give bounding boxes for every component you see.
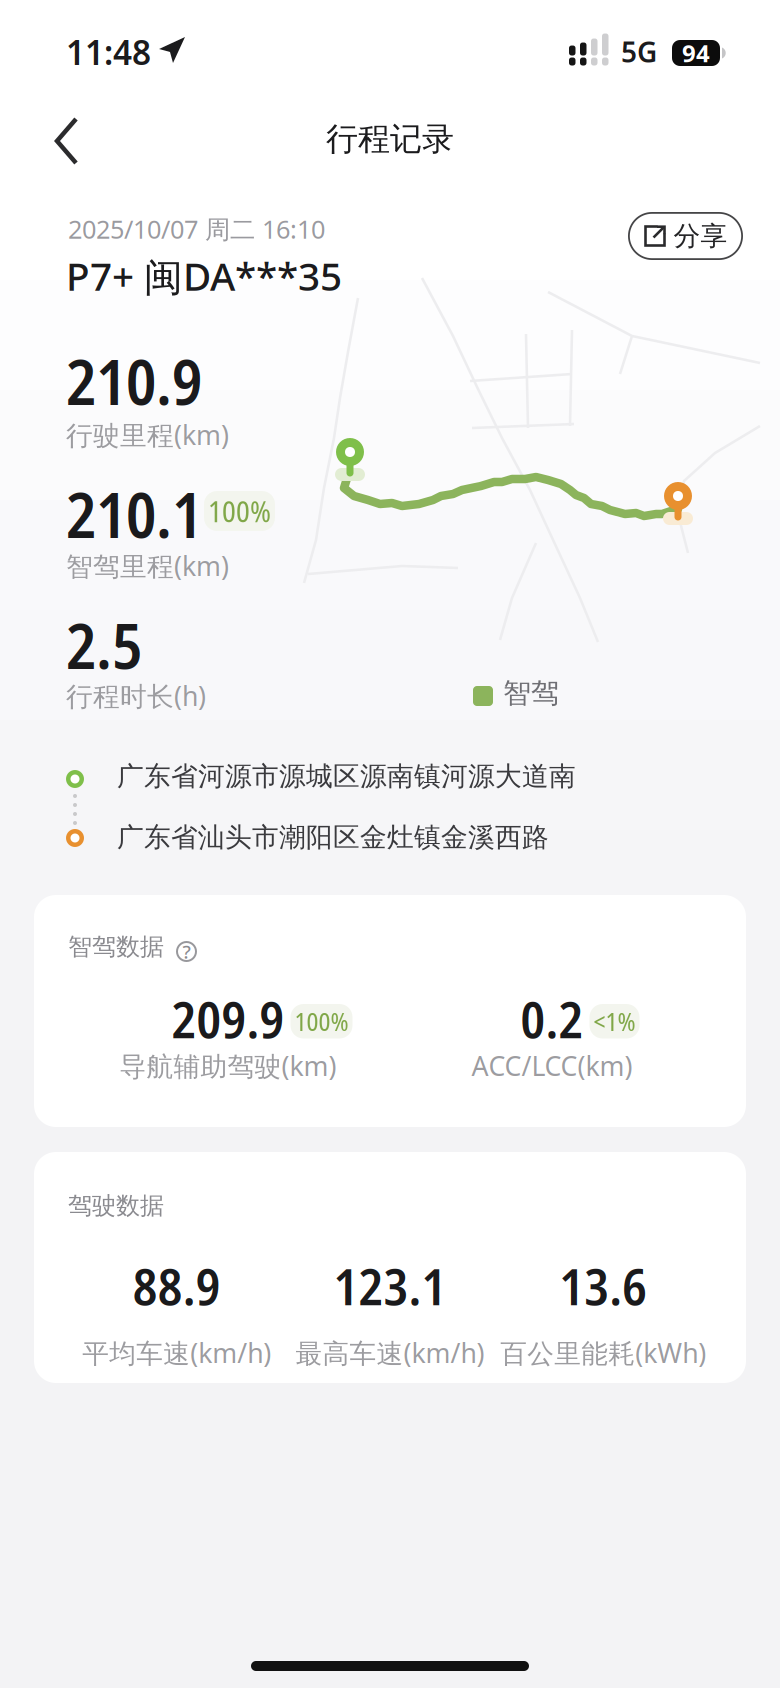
staticText: 行程时长(h)	[66, 678, 206, 713]
staticText: 最高车速(km/h)	[295, 1335, 484, 1370]
staticText: ACC/LCC(km)	[471, 1048, 632, 1083]
staticText: 210.9	[66, 338, 202, 423]
staticText: 驾驶数据	[68, 1191, 164, 1220]
staticText: 210.1	[66, 471, 202, 556]
staticText: 2025/10/07 周二 16:10	[68, 212, 325, 246]
button[interactable]: Back	[37, 107, 97, 175]
staticText: 百公里能耗(kWh)	[500, 1335, 706, 1370]
button[interactable]: 智驾数据说明	[174, 939, 199, 964]
staticText: 88.9	[133, 1251, 221, 1320]
staticText: 导航辅助驾驶(km)	[119, 1048, 336, 1083]
staticText: 11:48	[66, 30, 151, 74]
staticText: 广东省河源市源城区源南镇河源大道南	[117, 760, 576, 793]
staticText: 2.5	[66, 602, 142, 687]
staticText: 平均车速(km/h)	[82, 1335, 271, 1370]
staticText: 智驾	[503, 676, 559, 710]
staticText: 0.2	[520, 984, 583, 1053]
staticText: P7+ 闽DA***35	[66, 250, 342, 301]
staticText: <1%	[593, 1004, 635, 1038]
staticText: 分享	[673, 220, 727, 252]
staticText: 123.1	[333, 1251, 446, 1320]
staticText: 13.6	[559, 1251, 647, 1320]
staticText: 100%	[208, 491, 271, 531]
staticText: 94	[682, 37, 710, 69]
staticText: 行程记录	[326, 119, 454, 159]
staticText: 209.9	[171, 984, 284, 1053]
staticText: 智驾数据	[68, 932, 164, 961]
staticText: 行驶里程(km)	[66, 417, 229, 452]
staticText: ?	[182, 939, 190, 964]
staticText: 5G	[621, 33, 657, 70]
button[interactable]: 分享	[628, 212, 743, 260]
staticText: 100%	[294, 1004, 348, 1038]
staticText: 智驾里程(km)	[66, 548, 229, 583]
staticText: 广东省汕头市潮阳区金灶镇金溪西路	[117, 821, 549, 854]
